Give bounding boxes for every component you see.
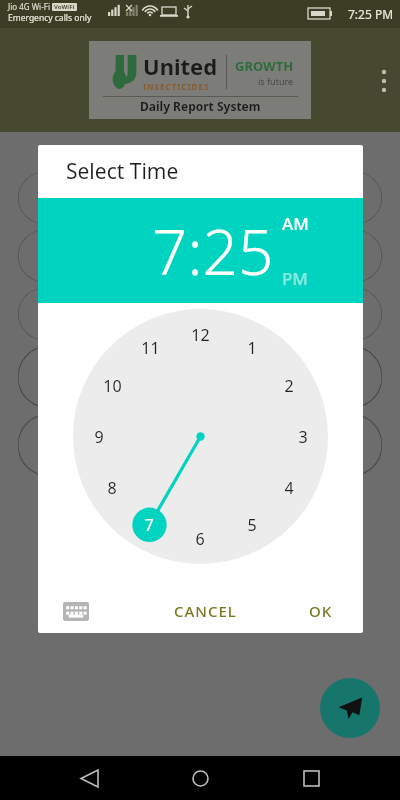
button[interactable]: 6 bbox=[186, 528, 214, 550]
staticText: 2 bbox=[284, 375, 294, 397]
staticText: 6 bbox=[195, 528, 205, 550]
staticText: 8 bbox=[107, 477, 117, 499]
button[interactable]: 8 bbox=[98, 477, 126, 499]
button[interactable]: 11 bbox=[136, 337, 164, 359]
button[interactable]: E bbox=[18, 172, 382, 224]
staticText: CANCEL bbox=[174, 601, 237, 621]
staticText: 9 bbox=[94, 426, 104, 448]
staticText: 7:25 PM bbox=[348, 6, 394, 22]
button[interactable]: E bbox=[18, 346, 382, 408]
staticText: Emergency calls only bbox=[8, 12, 92, 24]
staticText: 5 bbox=[247, 514, 257, 536]
button[interactable]: AM bbox=[282, 212, 309, 235]
button[interactable]: Send bbox=[320, 678, 380, 738]
button[interactable]: Switch to text input bbox=[58, 593, 94, 629]
staticText: 10 bbox=[103, 375, 122, 397]
button[interactable]: 10 bbox=[98, 375, 126, 397]
button[interactable]: CANCEL bbox=[166, 595, 245, 627]
staticText: GROWTH bbox=[235, 57, 294, 75]
button[interactable]: 12 bbox=[186, 324, 214, 346]
button[interactable]: More options bbox=[382, 69, 386, 91]
button[interactable]: PM bbox=[282, 267, 308, 290]
button[interactable]: Back bbox=[67, 756, 111, 800]
staticText: AM bbox=[282, 212, 309, 235]
button[interactable]: E bbox=[18, 230, 382, 282]
button[interactable]: S bbox=[18, 288, 382, 340]
staticText: 4 bbox=[284, 477, 294, 499]
button[interactable]: OK bbox=[301, 595, 341, 627]
staticText: United bbox=[143, 51, 218, 81]
staticText: Select Time bbox=[66, 157, 179, 186]
button[interactable]: 2 bbox=[275, 375, 303, 397]
staticText: PM bbox=[282, 267, 308, 290]
staticText: Daily Report System bbox=[140, 98, 261, 114]
button[interactable]: E bbox=[18, 414, 382, 476]
button[interactable]: 4 bbox=[275, 477, 303, 499]
button[interactable]: 1 bbox=[238, 337, 266, 359]
staticText: 12 bbox=[191, 324, 210, 346]
staticText: 3 bbox=[298, 426, 308, 448]
staticText: 1 bbox=[247, 337, 257, 359]
staticText: E bbox=[40, 189, 48, 208]
staticText: 7 bbox=[144, 514, 154, 536]
button[interactable]: 3 bbox=[289, 426, 317, 448]
staticText: Jio 4G Wi-Fi bbox=[8, 1, 50, 12]
button[interactable]: Home bbox=[178, 756, 222, 800]
staticText: INSECTICIDES bbox=[143, 81, 210, 92]
button[interactable]: 7 bbox=[135, 514, 163, 536]
staticText: 7:25 bbox=[152, 209, 274, 293]
staticText: OK bbox=[309, 601, 333, 621]
button[interactable]: 9 bbox=[85, 426, 113, 448]
button[interactable]: 5 bbox=[238, 514, 266, 536]
staticText: 11 bbox=[141, 337, 160, 359]
staticText: VoWiFi bbox=[54, 3, 75, 11]
button[interactable]: Recents bbox=[289, 756, 333, 800]
staticText: is future bbox=[258, 75, 294, 87]
